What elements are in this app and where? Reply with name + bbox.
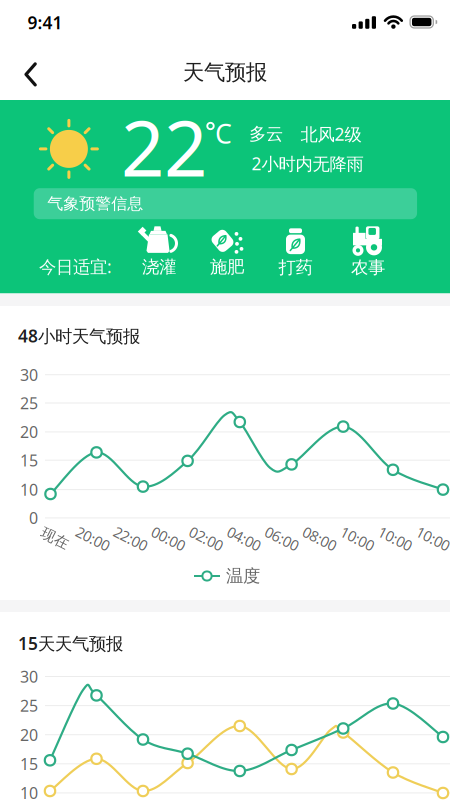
staticText: 30 <box>20 666 38 687</box>
staticText: 气象预警信息 <box>47 194 143 214</box>
staticText: 多云 <box>249 123 283 145</box>
button[interactable]: 打药 <box>278 228 312 278</box>
button[interactable]: 气象预警信息 <box>34 188 417 219</box>
staticText: 30 <box>20 364 38 385</box>
staticText: 04:00 <box>226 529 262 548</box>
staticText: 20:00 <box>75 529 111 548</box>
staticText: 15 <box>20 450 38 471</box>
staticText: 天气预报 <box>183 59 267 86</box>
staticText: 08:00 <box>302 529 338 548</box>
staticText: 9:41 <box>27 11 62 34</box>
staticText: 20 <box>20 421 38 442</box>
staticText: C <box>215 116 232 151</box>
staticText: 22:00 <box>113 529 149 548</box>
staticText: 现在 <box>40 529 70 547</box>
staticText: 浇灌 <box>142 256 176 278</box>
staticText: 25 <box>20 392 38 414</box>
staticText: 48小时天气预报 <box>18 324 140 347</box>
button[interactable]: 农事 <box>351 226 385 278</box>
staticText: 农事 <box>351 257 385 278</box>
staticText: 打药 <box>278 257 312 278</box>
staticText: 15天天气预报 <box>18 632 123 655</box>
staticText: 10:00 <box>339 529 375 548</box>
staticText: 2小时内无降雨 <box>251 152 363 175</box>
staticText: 02:00 <box>188 529 224 548</box>
staticText: 0 <box>29 507 38 528</box>
staticText: 15 <box>20 753 38 774</box>
staticText: 施肥 <box>210 256 244 278</box>
staticText: 今日适宜: <box>39 255 112 278</box>
staticText: 北风2级 <box>300 122 361 145</box>
staticText: 00:00 <box>150 529 186 548</box>
staticText: 10:00 <box>377 529 413 548</box>
button[interactable] <box>25 63 37 85</box>
staticText: 25 <box>20 695 38 716</box>
staticText: 06:00 <box>264 529 300 548</box>
staticText: 温度 <box>226 565 260 587</box>
staticText: 10 <box>20 479 38 500</box>
staticText: 20 <box>20 724 38 745</box>
staticText: 22 <box>121 96 207 197</box>
staticText: 10:00 <box>415 529 450 548</box>
button[interactable]: 施肥 <box>206 226 248 278</box>
staticText: 10 <box>20 782 38 800</box>
button[interactable]: 浇灌 <box>137 226 181 278</box>
